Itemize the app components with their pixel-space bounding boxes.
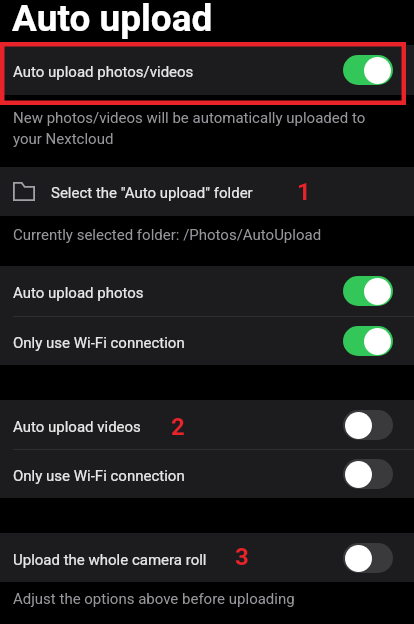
staticText: Select the "Auto upload" folder (51, 184, 253, 202)
staticText: 2 (171, 413, 185, 441)
staticText: Auto upload (12, 0, 213, 39)
staticText: 1 (297, 178, 311, 206)
button[interactable]: Upload the whole camera roll (343, 543, 393, 573)
button[interactable]: Only use Wi-Fi connection (0, 450, 414, 498)
staticText: Currently selected folder: /Photos/AutoU… (13, 226, 322, 244)
button[interactable]: Only use Wi-Fi connection (343, 326, 393, 356)
button[interactable]: Auto upload videos (343, 410, 393, 440)
button[interactable]: Upload the whole camera roll (0, 533, 414, 582)
button[interactable]: Only use Wi-Fi connection (0, 317, 414, 365)
button[interactable]: Only use Wi-Fi connection (343, 459, 393, 489)
staticText: New photos/videos will be automatically … (13, 109, 380, 147)
staticText: Only use Wi-Fi connection (13, 334, 185, 352)
button[interactable]: Auto upload photos (343, 276, 393, 306)
staticText: Auto upload videos (13, 418, 141, 436)
button[interactable]: Auto upload photos/videos (0, 45, 414, 95)
button[interactable]: Auto upload photos (0, 266, 414, 316)
button[interactable]: Auto upload photos/videos (343, 55, 393, 85)
button[interactable]: Auto upload videos (0, 400, 414, 449)
staticText: Upload the whole camera roll (13, 551, 207, 569)
staticText: Only use Wi-Fi connection (13, 467, 185, 485)
staticText: Auto upload photos (13, 284, 144, 302)
staticText: Adjust the options above before uploadin… (13, 590, 295, 608)
staticText: 3 (235, 543, 249, 571)
staticText: Auto upload photos/videos (13, 63, 194, 81)
button[interactable]: Select the "Auto upload" folder (0, 167, 414, 216)
